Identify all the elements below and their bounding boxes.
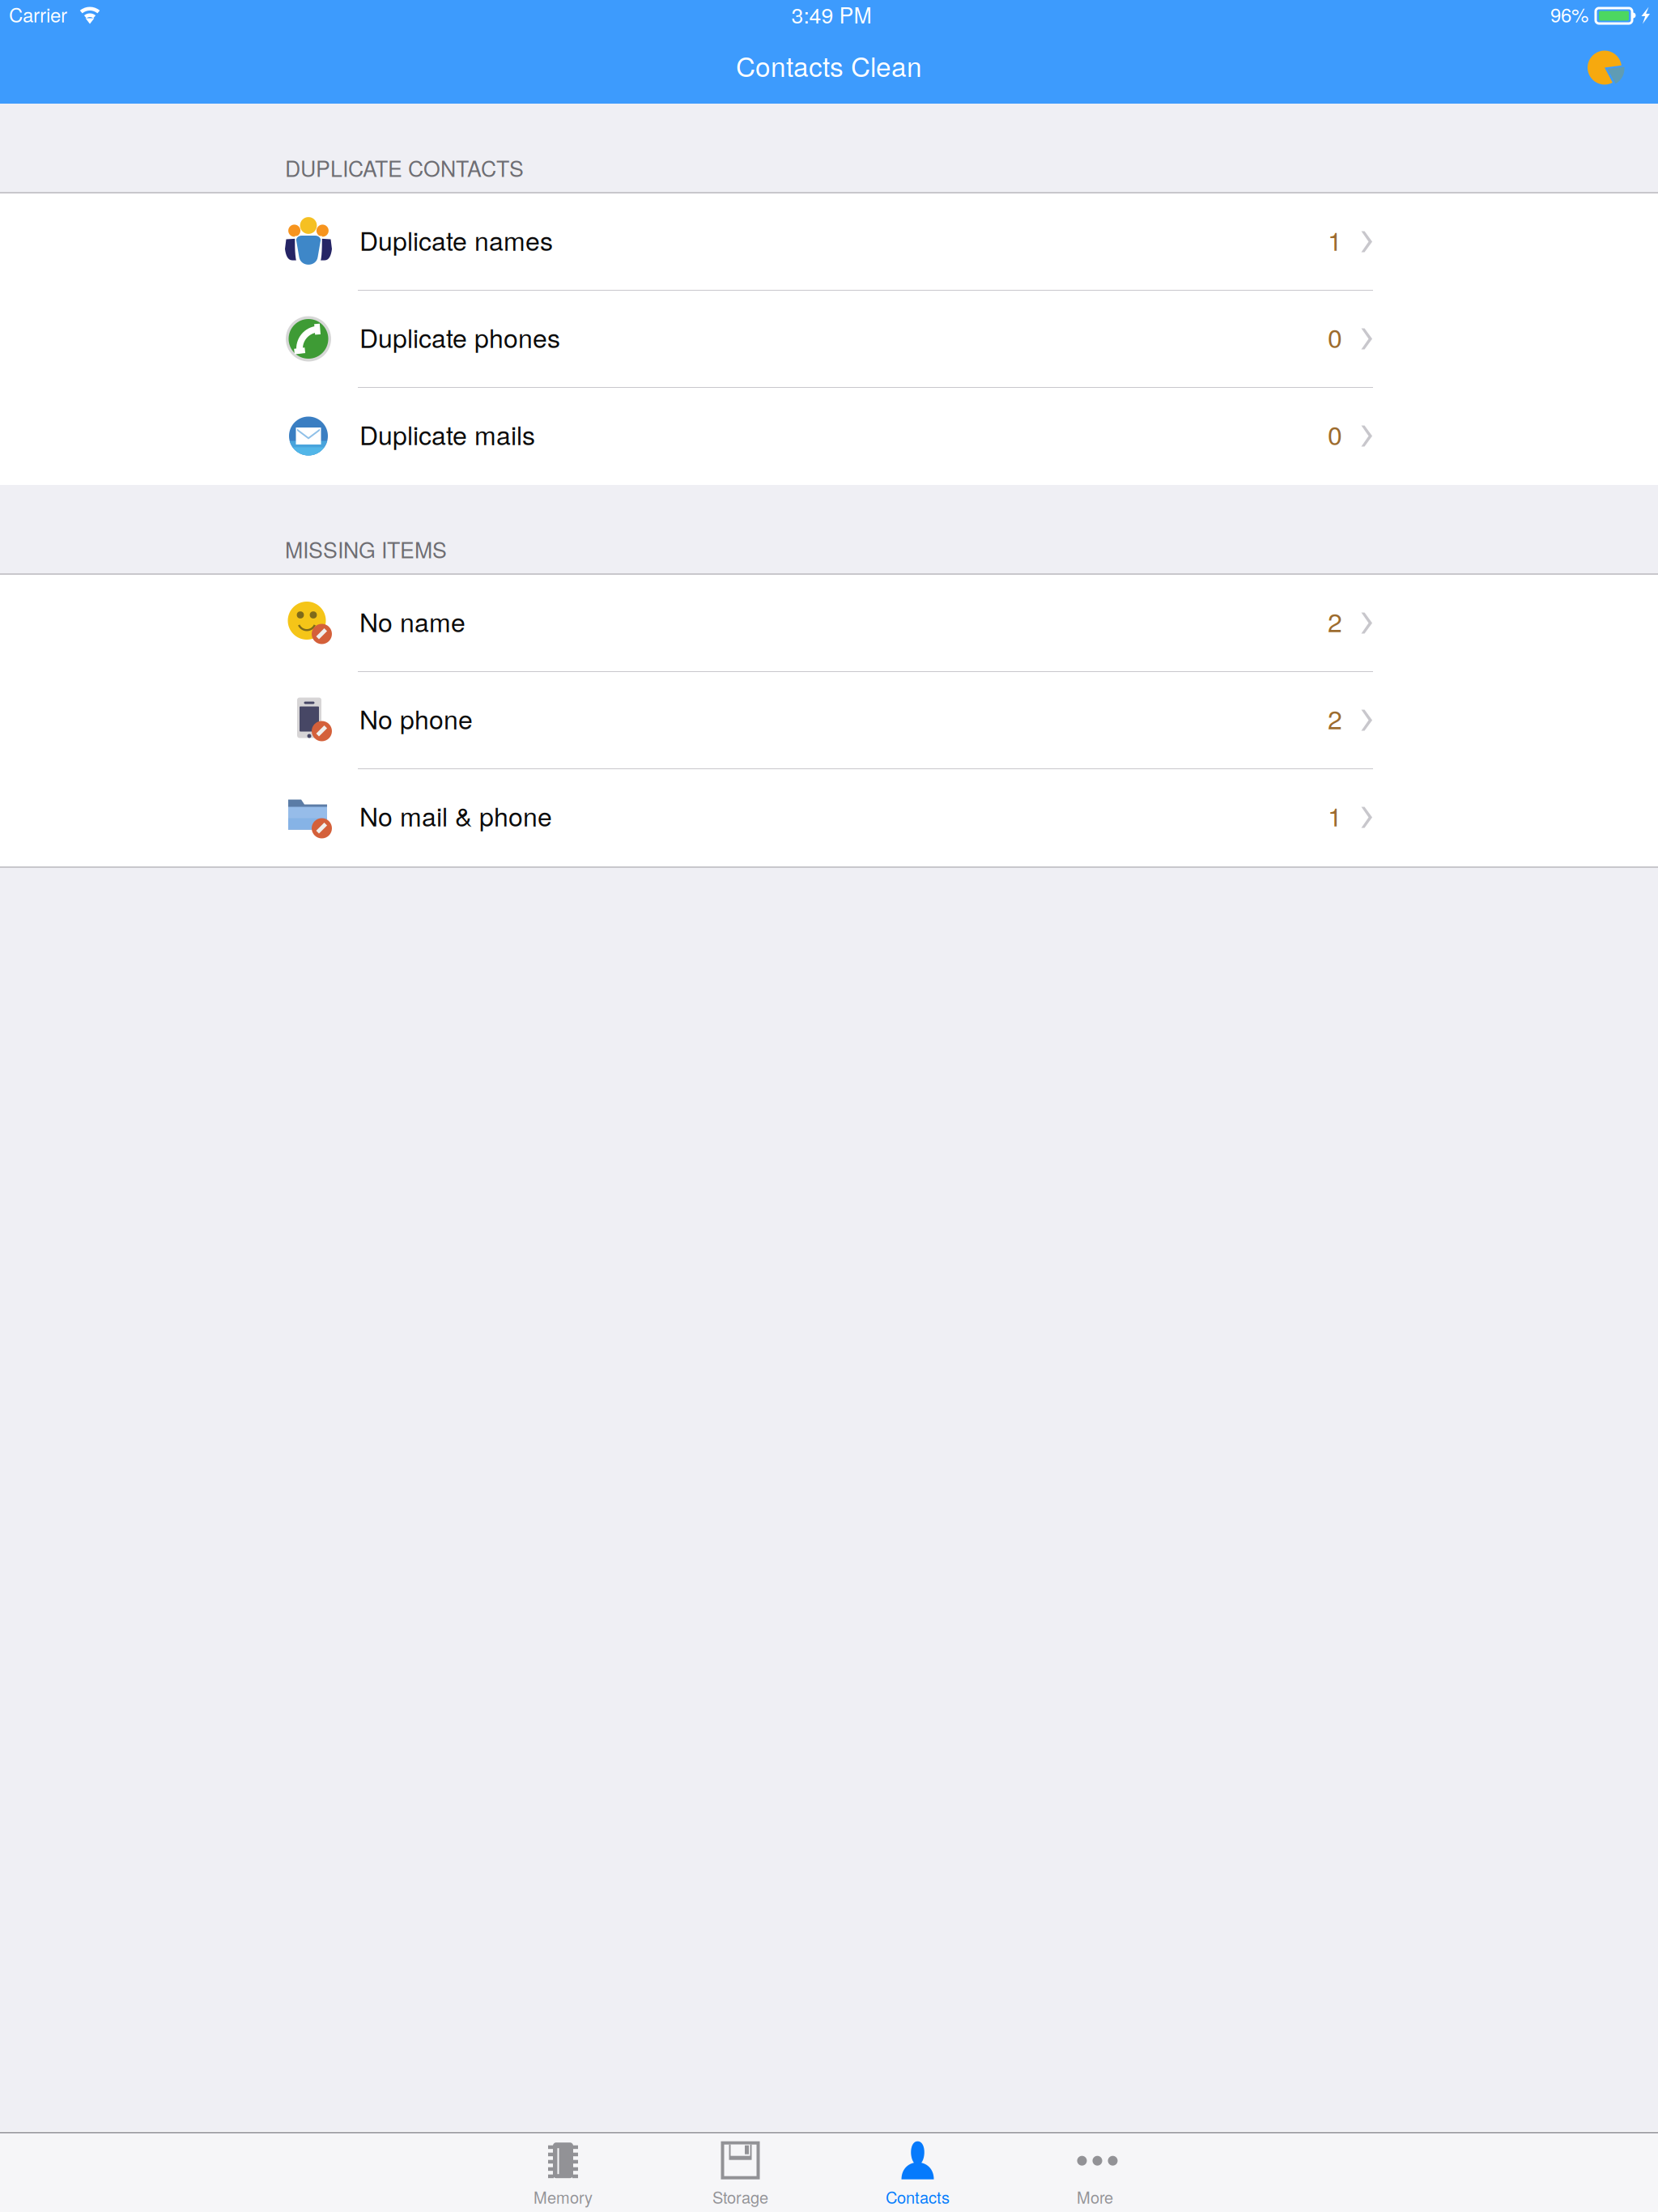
staticText: 1 bbox=[1328, 797, 1342, 834]
staticText: 3:49 PM bbox=[791, 0, 872, 30]
button[interactable]: No mail & phone bbox=[0, 769, 1658, 866]
button[interactable]: Storage bbox=[652, 2133, 829, 2212]
staticText: 0 bbox=[1328, 415, 1342, 453]
staticText: No phone bbox=[359, 700, 473, 737]
staticText: Duplicate phones bbox=[359, 318, 560, 355]
button[interactable]: Statistics bbox=[1588, 47, 1628, 88]
staticText: Contacts Clean bbox=[736, 46, 922, 84]
button[interactable]: Duplicate names bbox=[0, 194, 1658, 290]
button[interactable]: Duplicate mails bbox=[0, 388, 1658, 484]
button[interactable]: Contacts bbox=[829, 2133, 1006, 2212]
staticText: No name bbox=[359, 602, 466, 640]
staticText: Carrier bbox=[9, 0, 67, 28]
button[interactable]: No name bbox=[0, 575, 1658, 671]
button[interactable]: Memory bbox=[474, 2133, 652, 2212]
staticText: 2 bbox=[1328, 700, 1342, 737]
staticText: More bbox=[1077, 2185, 1113, 2208]
staticText: Duplicate mails bbox=[359, 415, 535, 453]
staticText: DUPLICATE CONTACTS bbox=[285, 152, 524, 183]
staticText: No mail & phone bbox=[359, 797, 552, 834]
staticText: Duplicate names bbox=[359, 221, 553, 258]
staticText: Contacts bbox=[886, 2185, 950, 2208]
staticText: Storage bbox=[712, 2185, 768, 2208]
staticText: Memory bbox=[534, 2185, 593, 2208]
staticText: 2 bbox=[1328, 602, 1342, 640]
button[interactable]: No phone bbox=[0, 672, 1658, 768]
button[interactable]: More bbox=[1006, 2133, 1184, 2212]
button[interactable]: Duplicate phones bbox=[0, 291, 1658, 387]
staticText: MISSING ITEMS bbox=[285, 533, 447, 564]
staticText: 1 bbox=[1328, 221, 1342, 258]
staticText: 96% bbox=[1550, 0, 1588, 28]
staticText: 0 bbox=[1328, 318, 1342, 355]
